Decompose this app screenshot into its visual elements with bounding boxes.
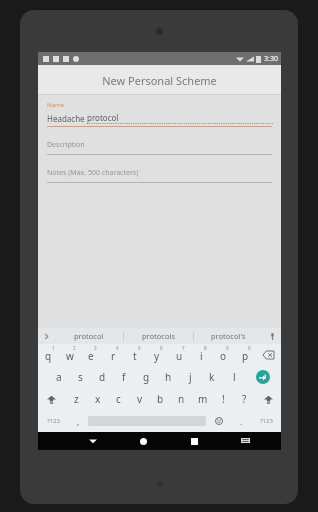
button[interactable]: d xyxy=(91,366,113,388)
button[interactable]: Shift xyxy=(255,388,281,410)
staticText: q xyxy=(45,349,52,363)
staticText: Notes (Max. 500 characters) xyxy=(47,168,139,178)
staticText: p xyxy=(242,349,249,363)
staticText: protocol xyxy=(87,112,119,123)
button[interactable]: 3 xyxy=(80,344,102,366)
staticText: z xyxy=(74,392,79,406)
button[interactable]: 7 xyxy=(168,344,190,366)
button[interactable]: 9 xyxy=(212,344,234,366)
staticText: 3:30 xyxy=(264,54,278,64)
staticText: 0 xyxy=(248,345,251,351)
staticText: t xyxy=(133,349,137,363)
button[interactable]: More suggestions xyxy=(38,328,54,344)
button[interactable]: 6 xyxy=(146,344,168,366)
staticText: h xyxy=(165,370,172,384)
button[interactable]: z xyxy=(65,388,87,410)
button[interactable]: n xyxy=(171,388,192,410)
staticText: c xyxy=(116,392,121,406)
button[interactable]: ! xyxy=(213,388,234,410)
staticText: ?123 xyxy=(47,417,60,425)
staticText: 7 xyxy=(182,345,185,351)
staticText: n xyxy=(178,392,185,406)
staticText: d xyxy=(99,370,106,384)
staticText: g xyxy=(143,370,150,384)
button[interactable]: x xyxy=(87,388,108,410)
button[interactable]: Enter xyxy=(245,366,280,388)
staticText: a xyxy=(56,370,62,384)
staticText: 3 xyxy=(94,345,97,351)
button[interactable]: h xyxy=(157,366,179,388)
button[interactable]: k xyxy=(201,366,223,388)
staticText: v xyxy=(137,392,143,406)
button[interactable]: ?123 xyxy=(251,410,281,432)
staticText: u xyxy=(176,349,183,363)
button[interactable]: 0 xyxy=(234,344,256,366)
button[interactable]: Voice input xyxy=(263,328,281,344)
button[interactable]: Hide keyboard xyxy=(220,432,271,450)
button[interactable]: protocol xyxy=(54,328,123,344)
button[interactable]: 2 xyxy=(59,344,80,366)
staticText: e xyxy=(88,349,94,363)
staticText: f xyxy=(122,370,126,384)
staticText: y xyxy=(154,349,160,363)
staticText: 6 xyxy=(160,345,163,351)
staticText: protocol's xyxy=(211,331,246,341)
button[interactable]: protocol's xyxy=(194,328,263,344)
button[interactable]: 8 xyxy=(190,344,212,366)
button[interactable]: ? xyxy=(234,388,255,410)
button[interactable]: Shift xyxy=(38,388,65,410)
staticText: Name xyxy=(47,101,64,109)
staticText: m xyxy=(198,392,208,406)
staticText: s xyxy=(78,370,83,384)
staticText: i xyxy=(200,349,203,363)
staticText: k xyxy=(209,370,215,384)
staticText: r xyxy=(111,349,116,363)
staticText: 1 xyxy=(52,345,55,351)
staticText: 8 xyxy=(204,345,207,351)
button[interactable]: b xyxy=(150,388,171,410)
staticText: New Personal Scheme xyxy=(102,73,217,88)
button[interactable]: c xyxy=(108,388,129,410)
staticText: w xyxy=(66,349,74,363)
button[interactable]: a xyxy=(48,366,69,388)
button[interactable]: ?123 xyxy=(38,410,68,432)
button[interactable]: g xyxy=(135,366,157,388)
staticText: ? xyxy=(242,392,247,406)
button[interactable]: 5 xyxy=(124,344,146,366)
button[interactable]: . xyxy=(231,410,251,432)
staticText: . xyxy=(240,416,243,427)
button[interactable]: Backspace xyxy=(256,344,281,366)
button[interactable]: m xyxy=(192,388,213,410)
staticText: 5 xyxy=(138,345,141,351)
button[interactable]: , xyxy=(68,410,88,432)
button[interactable]: j xyxy=(179,366,201,388)
button[interactable]: f xyxy=(113,366,135,388)
button[interactable]: 4 xyxy=(102,344,124,366)
button[interactable]: 1 xyxy=(38,344,59,366)
staticText: l xyxy=(233,370,236,384)
staticText: 9 xyxy=(226,345,229,351)
staticText: j xyxy=(189,370,192,384)
button[interactable]: v xyxy=(129,388,150,410)
button[interactable]: Recents xyxy=(169,432,220,450)
staticText: , xyxy=(77,416,80,427)
button[interactable]: Home xyxy=(118,432,169,450)
button[interactable]: s xyxy=(69,366,91,388)
button[interactable]: l xyxy=(223,366,245,388)
staticText: Description xyxy=(47,140,85,150)
staticText: 2 xyxy=(73,345,76,351)
staticText: ?123 xyxy=(260,417,273,425)
staticText: x xyxy=(95,392,101,406)
button[interactable]: Emoji xyxy=(206,410,231,432)
staticText: ! xyxy=(222,392,225,406)
staticText: protocol xyxy=(74,331,104,341)
staticText: 4 xyxy=(116,345,119,351)
button[interactable]: Back xyxy=(67,432,118,450)
staticText: o xyxy=(220,349,227,363)
staticText: Headache xyxy=(47,113,87,124)
staticText: b xyxy=(157,392,164,406)
staticText: protocols xyxy=(142,331,176,341)
button[interactable]: protocols xyxy=(124,328,193,344)
